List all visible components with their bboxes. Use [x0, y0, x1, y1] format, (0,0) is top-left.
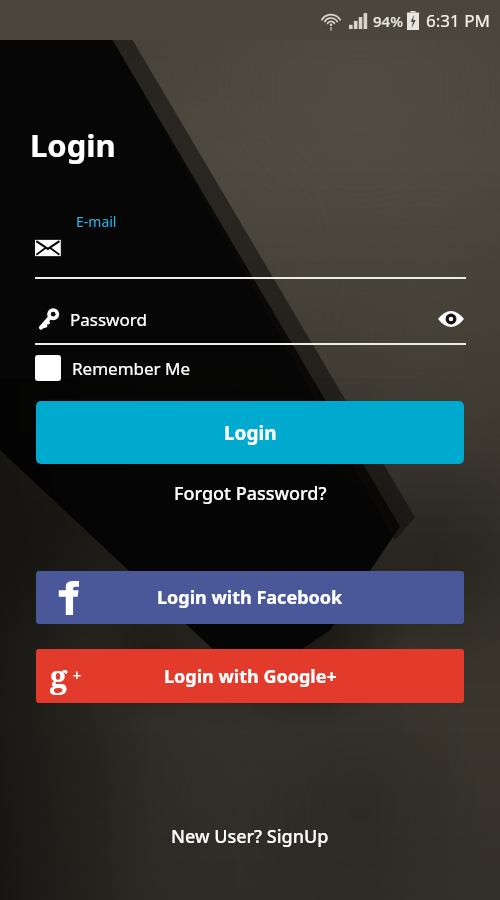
- staticText: Login with Google+: [164, 664, 337, 689]
- staticText: Login: [30, 124, 116, 166]
- staticText: g: [50, 655, 68, 697]
- button[interactable]: New User? SignUp: [163, 821, 337, 852]
- staticText: Login with Facebook: [157, 585, 343, 610]
- button[interactable]: g: [36, 649, 464, 703]
- staticText: 6:31 PM: [426, 9, 490, 32]
- staticText: New User? SignUp: [171, 824, 329, 849]
- staticText: Forgot Password?: [174, 481, 327, 506]
- button[interactable]: [35, 237, 466, 279]
- staticText: Password: [70, 308, 147, 331]
- button[interactable]: Login with Facebook: [36, 571, 464, 624]
- staticText: Login: [224, 420, 277, 446]
- button[interactable]: Password: [35, 307, 466, 331]
- button[interactable]: Remember Me: [35, 355, 191, 381]
- staticText: +: [72, 663, 82, 686]
- button[interactable]: Forgot Password?: [166, 478, 335, 509]
- staticText: 94%: [373, 11, 403, 31]
- staticText: Remember Me: [72, 357, 191, 380]
- button[interactable]: Show password: [436, 307, 466, 331]
- staticText: E-mail: [76, 212, 117, 231]
- button[interactable]: Login: [36, 401, 464, 464]
